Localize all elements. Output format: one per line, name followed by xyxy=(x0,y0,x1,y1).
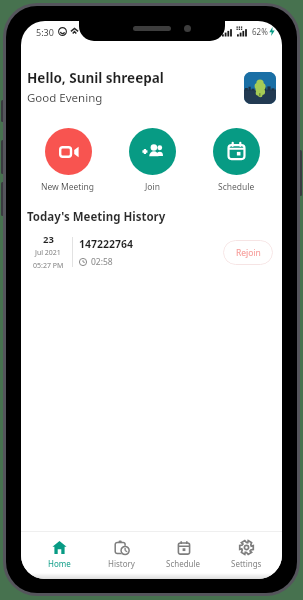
button[interactable]: New Meeting xyxy=(41,128,95,193)
staticText: Home xyxy=(48,558,71,569)
staticText: Good Evening xyxy=(27,90,103,106)
button[interactable]: Rejoin xyxy=(223,240,273,265)
staticText: Schedule xyxy=(218,181,255,193)
button[interactable]: History xyxy=(102,534,141,571)
button[interactable]: Home xyxy=(42,534,77,571)
staticText: History xyxy=(108,558,135,569)
staticText: Jul 2021 xyxy=(35,248,61,258)
button[interactable]: Schedule xyxy=(213,128,260,193)
button[interactable]: Schedule xyxy=(160,535,207,571)
staticText: Join xyxy=(145,181,160,193)
staticText: 147222764 xyxy=(79,237,134,251)
button[interactable]: 23 xyxy=(21,233,282,271)
staticText: Rejoin xyxy=(236,247,261,259)
staticText: 05:27 PM xyxy=(33,261,64,271)
staticText: 23 xyxy=(43,233,54,246)
button[interactable]: Join xyxy=(129,128,176,193)
staticText: Schedule xyxy=(166,558,201,569)
staticText: New Meeting xyxy=(41,181,95,193)
staticText: Today's Meeting History xyxy=(27,209,166,225)
staticText: 5:30 xyxy=(36,26,54,38)
staticText: Settings xyxy=(231,558,262,569)
staticText: Hello, Sunil shreepal xyxy=(27,69,164,87)
staticText: 02:58 xyxy=(91,256,113,268)
button[interactable]: Settings xyxy=(225,534,268,571)
staticText: 62% xyxy=(252,26,268,37)
